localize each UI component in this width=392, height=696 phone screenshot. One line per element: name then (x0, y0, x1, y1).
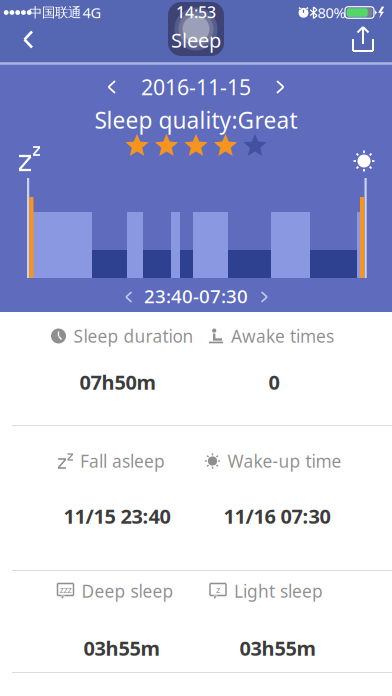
button[interactable]: Next period (255, 288, 273, 306)
staticText: Wake-up time (227, 449, 341, 472)
button[interactable]: Previous period (120, 288, 138, 306)
staticText: Awake times (231, 324, 334, 347)
staticText: Fall asleep (80, 449, 165, 472)
staticText: 14:53 (176, 1, 216, 23)
staticText: 0 (268, 369, 279, 395)
staticText: Deep sleep (81, 579, 173, 602)
staticText: 03h55m (83, 635, 160, 661)
staticText: 07h50m (79, 369, 156, 395)
staticText: 80% (317, 3, 345, 22)
staticText: zzz (59, 583, 71, 596)
button[interactable]: Share (343, 22, 383, 56)
button[interactable]: Next day (267, 76, 293, 98)
staticText: 11/15 23:40 (63, 503, 170, 529)
staticText: Light sleep (234, 579, 323, 602)
staticText: z (216, 583, 220, 596)
staticText: Sleep duration (73, 324, 193, 347)
staticText: 03h55m (239, 635, 316, 661)
staticText: 2016-11-15 (141, 73, 251, 101)
staticText: Sleep quality:Great (94, 105, 297, 135)
staticText: Sleep (171, 27, 221, 53)
staticText: 11/16 07:30 (223, 503, 330, 529)
staticText: 4G (82, 3, 101, 22)
button[interactable]: Previous day (99, 76, 125, 98)
staticText: 23:40-07:30 (144, 284, 248, 308)
button[interactable]: Back (6, 17, 50, 61)
staticText: 中国联通 (29, 4, 81, 21)
